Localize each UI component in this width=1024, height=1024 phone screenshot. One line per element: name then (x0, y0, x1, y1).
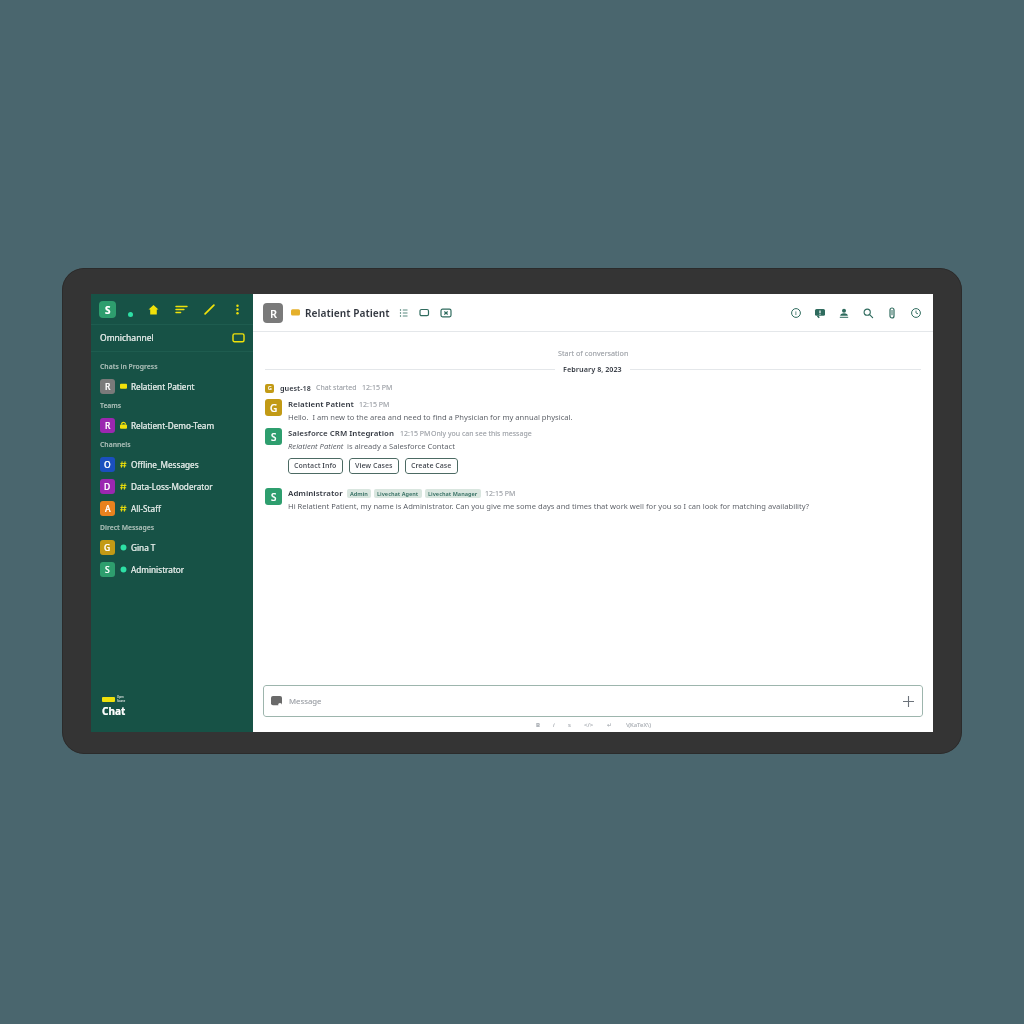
staticText: Create Case (411, 461, 452, 471)
staticText: Relatient-Demo-Team (131, 420, 215, 431)
button[interactable]: Threads (813, 306, 827, 320)
staticText: S (271, 430, 277, 444)
staticText: R (270, 306, 277, 321)
staticText: D (104, 481, 111, 493)
staticText: A (105, 503, 111, 515)
staticText: Livechat Agent (377, 490, 419, 497)
staticText: G (268, 385, 272, 392)
button[interactable]: Admin (347, 489, 371, 498)
staticText: Chat started (316, 383, 357, 393)
button[interactable]: Forward chat (418, 306, 432, 320)
button[interactable]: Info (789, 306, 803, 320)
button[interactable]: \(KaTeX\) (625, 721, 652, 729)
button[interactable]: Create Case (405, 458, 458, 474)
staticText: G (270, 401, 278, 415)
button[interactable]: Files (885, 306, 899, 320)
button[interactable]: Account (99, 301, 116, 318)
staticText: 12:15 PM (359, 400, 390, 410)
staticText: Relatient Patient (131, 381, 195, 392)
staticText: Livechat Manager (428, 490, 478, 497)
button[interactable]: B (535, 721, 541, 729)
staticText: Hi Relatient Patient, my name is Adminis… (288, 501, 810, 511)
button[interactable]: G (91, 536, 253, 558)
button[interactable]: Room options (397, 306, 411, 320)
staticText: Only you can see this message (431, 429, 532, 439)
button[interactable]: Livechat Agent (374, 489, 422, 498)
button[interactable]: Create new (202, 302, 217, 317)
staticText: s (568, 721, 571, 729)
staticText: i (795, 309, 797, 317)
button[interactable]: i (552, 721, 556, 729)
staticText: B (536, 721, 540, 729)
staticText: Data-Loss-Moderator (131, 481, 213, 492)
staticText: O (104, 459, 111, 471)
staticText: i (553, 721, 555, 729)
button[interactable]: ↵ (606, 721, 614, 728)
button[interactable]: Add attachment (901, 694, 915, 708)
staticText: guest-18 (280, 383, 311, 393)
staticText: View Cases (355, 461, 393, 471)
staticText: Message (289, 696, 322, 707)
staticText: Teams (100, 401, 122, 410)
button[interactable]: Home (146, 302, 161, 317)
staticText: Channels (100, 440, 131, 449)
staticText: Contact Info (294, 461, 337, 471)
staticText: ↵ (607, 721, 613, 728)
button[interactable]: Members (837, 306, 851, 320)
staticText: Offline_Messages (131, 459, 199, 470)
staticText: Omnichannel (100, 332, 154, 344)
staticText: Chat (102, 704, 126, 718)
button[interactable]: R (91, 414, 253, 436)
staticText: Gina T (131, 542, 156, 553)
button[interactable]: A (91, 497, 253, 519)
staticText: Admin (350, 490, 368, 497)
button[interactable]: Contact Info (288, 458, 343, 474)
button[interactable]: </> (583, 721, 595, 729)
button[interactable]: O (91, 453, 253, 475)
staticText: is already a Salesforce Contact (347, 441, 455, 451)
button[interactable]: View Cases (349, 458, 399, 474)
staticText: Chats in Progress (100, 362, 158, 371)
staticText: 12:15 PM (485, 489, 516, 499)
staticText: February 8, 2023 (563, 364, 622, 374)
staticText: Hello. I am new to the area and need to … (288, 412, 573, 422)
staticText: Relatient Patient (288, 441, 344, 451)
staticText: Salesforce CRM Integration (288, 428, 395, 439)
staticText: Start of conversation (558, 348, 629, 358)
staticText: Relatient Patient (288, 399, 354, 410)
staticText: Administrator (288, 488, 343, 499)
staticText: Relatient Patient (305, 306, 390, 320)
button[interactable]: Livechat Manager (425, 489, 481, 498)
button[interactable]: Search (861, 306, 875, 320)
staticText: G (104, 542, 111, 554)
button[interactable]: Sort (174, 302, 189, 317)
staticText: R (105, 381, 111, 393)
staticText: 12:15 PM (400, 429, 431, 439)
button[interactable]: Close chat (439, 306, 453, 320)
staticText: Administrator (131, 564, 185, 575)
staticText: S (105, 564, 110, 576)
staticText: \(KaTeX\) (626, 721, 651, 729)
button[interactable]: Message (263, 685, 923, 717)
button[interactable]: More options (230, 302, 245, 317)
button[interactable]: S (91, 558, 253, 580)
button[interactable]: R (91, 375, 253, 397)
staticText: All-Staff (131, 503, 161, 514)
button[interactable]: s (567, 721, 572, 729)
staticText: S (271, 490, 277, 504)
button[interactable]: D (91, 475, 253, 497)
button[interactable]: R (263, 303, 283, 323)
staticText: 12:15 PM (362, 383, 393, 393)
button[interactable]: History (909, 306, 923, 320)
staticText: Open Source (117, 695, 126, 703)
staticText: Direct Messages (100, 523, 155, 532)
staticText: R (105, 420, 111, 432)
button[interactable]: Omnichannel (91, 325, 253, 351)
staticText: </> (584, 721, 594, 729)
staticText: S (105, 303, 111, 317)
